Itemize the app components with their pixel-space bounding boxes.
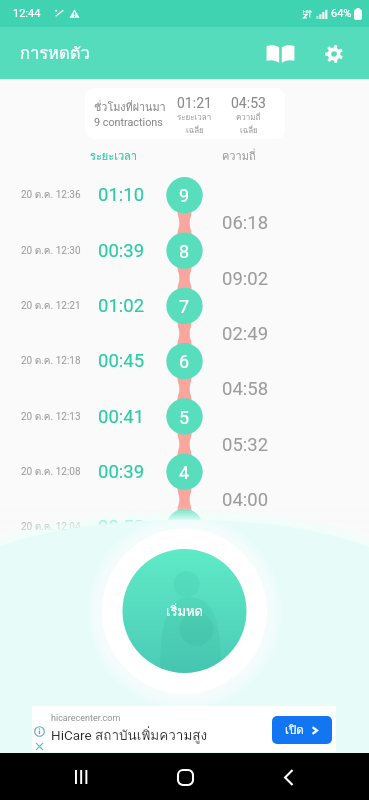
staticText: ความถี่ <box>222 147 256 164</box>
button[interactable]: เริ่มหด <box>124 550 246 672</box>
staticText: ระยะเวลา <box>177 111 212 124</box>
staticText: 05:32 <box>222 434 269 456</box>
staticText: 3 <box>179 517 190 538</box>
staticText: hicarecenter.com <box>51 713 121 724</box>
staticText: 06:18 <box>222 212 269 234</box>
staticText: การหดตัว <box>20 40 90 66</box>
button[interactable]: 20 ต.ค. 12:04 <box>0 514 369 540</box>
staticText: 9 <box>179 185 190 206</box>
staticText: HiCare สถาบันเพิ่มความสูง <box>51 724 208 745</box>
staticText: 01:10 <box>98 184 145 206</box>
button[interactable]: Back <box>266 755 310 799</box>
staticText: ชั่วโมงที่ผ่านมา <box>94 99 166 116</box>
button[interactable]: 20 ต.ค. 12:18 <box>0 348 369 374</box>
staticText: เริ่มหด <box>166 601 204 622</box>
staticText: 20 ต.ค. 12:30 <box>21 243 81 259</box>
staticText: 00:52 <box>98 516 145 538</box>
staticText: 20 ต.ค. 12:04 <box>21 519 81 535</box>
button[interactable]: 20 ต.ค. 12:08 <box>0 459 369 485</box>
staticText: 9 contractions <box>94 116 163 129</box>
staticText: 5 <box>179 407 190 428</box>
staticText: 00:48 <box>98 571 145 593</box>
staticText: 09:02 <box>222 268 269 290</box>
staticText: 7 <box>179 296 190 317</box>
staticText: ระยะเวลา <box>90 147 138 164</box>
staticText: 00:45 <box>98 350 145 372</box>
staticText: 6 <box>179 351 190 372</box>
button[interactable]: 20 ต.ค. 12:13 <box>0 404 369 430</box>
staticText: 01:02 <box>98 295 145 317</box>
other: Ad info <box>34 726 45 737</box>
other: Close ad <box>35 742 44 751</box>
staticText: 04:53 <box>231 95 266 111</box>
staticText: 00:39 <box>98 461 145 483</box>
button[interactable]: 20 ต.ค. 12:21 <box>0 293 369 319</box>
staticText: 02:55 <box>222 599 269 621</box>
button[interactable]: 20 ต.ค. 12:00 <box>0 569 369 595</box>
staticText: 20 ต.ค. 12:18 <box>21 353 81 369</box>
staticText: เฉลี่ย <box>240 124 258 137</box>
staticText: 20 ต.ค. 12:13 <box>21 409 81 425</box>
button[interactable]: 20 ต.ค. 12:36 <box>0 182 369 208</box>
staticText: 20 ต.ค. 12:21 <box>21 298 81 314</box>
staticText: 8 <box>179 241 190 262</box>
staticText: 04:00 <box>222 489 269 511</box>
staticText: เฉลี่ย <box>186 124 204 137</box>
staticText: 02:49 <box>222 323 269 345</box>
button[interactable]: Guide <box>258 31 303 76</box>
staticText: 20 ต.ค. 12:36 <box>21 187 81 203</box>
button[interactable]: ชั่วโมงที่ผ่านมา <box>85 88 285 139</box>
staticText: 20 ต.ค. 12:08 <box>21 464 81 480</box>
staticText: 00:39 <box>98 240 145 262</box>
staticText: 64% <box>331 7 352 20</box>
staticText: 4 <box>179 462 190 483</box>
button[interactable]: เปิด <box>272 716 332 744</box>
staticText: 00:41 <box>98 406 145 428</box>
staticText: 01:21 <box>177 95 212 111</box>
staticText: เปิด <box>285 721 304 739</box>
staticText: 12:44 <box>13 7 41 20</box>
staticText: 03:25 <box>222 544 269 566</box>
button[interactable]: Recents <box>59 755 103 799</box>
button[interactable]: Settings <box>311 31 356 76</box>
button[interactable]: 20 ต.ค. 12:30 <box>0 238 369 264</box>
button[interactable]: Home <box>163 755 207 799</box>
staticText: ความถี่ <box>236 111 261 124</box>
staticText: 04:58 <box>222 378 269 400</box>
